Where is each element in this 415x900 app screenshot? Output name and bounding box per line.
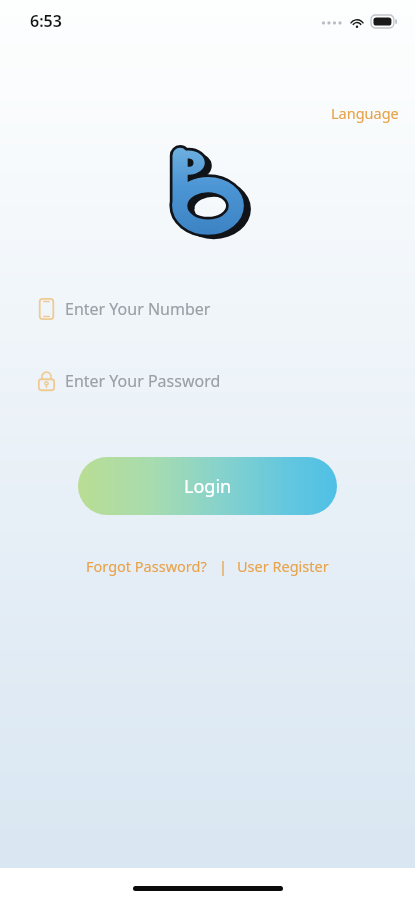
staticText: Enter Your Password: [65, 370, 221, 392]
button[interactable]: User Register: [233, 553, 333, 579]
button[interactable]: Forgot Password?: [82, 553, 211, 579]
staticText: Forgot Password?: [86, 556, 207, 576]
staticText: |: [219, 556, 227, 576]
staticText: User Register: [237, 556, 329, 576]
button[interactable]: Enter Your Password: [0, 364, 415, 398]
staticText: 6:53: [30, 10, 62, 32]
staticText: Login: [184, 474, 232, 499]
staticText: Enter Your Number: [65, 298, 211, 320]
staticText: Language: [331, 103, 399, 123]
button[interactable]: Language: [325, 100, 405, 126]
button[interactable]: Enter Your Number: [0, 292, 415, 326]
button[interactable]: Login: [78, 457, 337, 515]
